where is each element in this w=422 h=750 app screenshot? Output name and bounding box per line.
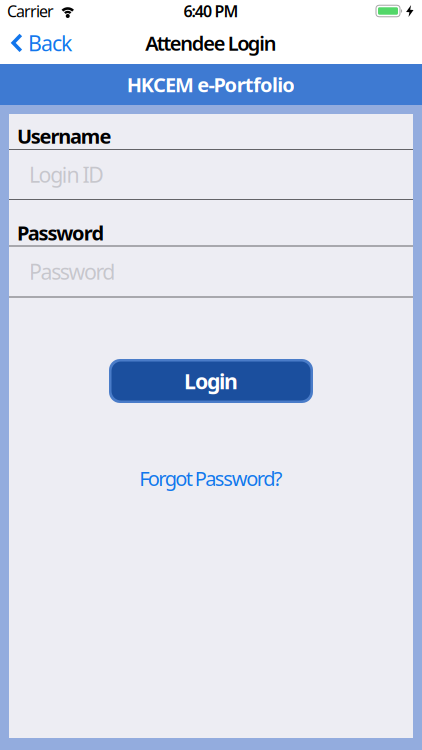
staticText: HKCEM e-Portfolio [127, 71, 295, 98]
button[interactable]: Login ID [9, 150, 413, 199]
staticText: Username [17, 123, 112, 149]
staticText: Forgot Password? [139, 465, 283, 492]
staticText: Password [17, 219, 105, 246]
staticText: Login [184, 367, 238, 395]
button[interactable]: Login [109, 359, 313, 403]
button[interactable]: Back [0, 29, 72, 57]
staticText: 6:40 PM [183, 0, 239, 22]
staticText: Login ID [29, 160, 104, 189]
staticText: Carrier [7, 0, 54, 22]
staticText: Password [29, 257, 115, 286]
button[interactable]: Password [9, 246, 413, 296]
staticText: Attendee Login [145, 30, 277, 56]
button[interactable]: Forgot Password? [139, 465, 283, 492]
staticText: Back [28, 29, 72, 57]
